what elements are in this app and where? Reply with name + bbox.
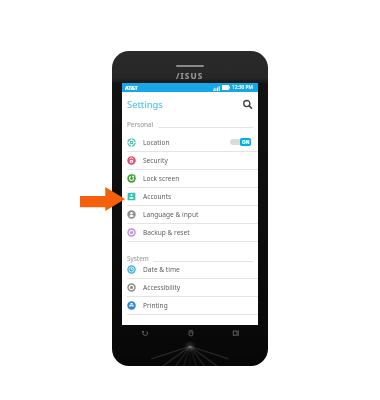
button[interactable]: Backup & reset [122,224,258,242]
staticText: ON [242,139,250,145]
staticText: Printing [143,301,168,310]
staticText: Settings [127,98,163,111]
button[interactable]: Home [168,324,213,342]
staticText: Language & input [143,210,199,219]
button[interactable]: Back [122,324,168,342]
staticText: 12:30 PM [232,84,253,91]
button[interactable]: Language & input [122,206,258,224]
staticText: Accessibility [143,283,181,292]
button[interactable]: Recent apps [213,324,258,342]
button[interactable]: Security [122,152,258,170]
button[interactable]: Date & time [122,261,258,279]
button[interactable]: Accounts [122,188,258,206]
staticText: Personal [127,120,154,129]
staticText: Accounts [143,192,172,201]
staticText: Backup & reset [143,228,190,237]
staticText: AT&T [125,84,138,91]
staticText: Location [143,138,170,147]
staticText: /ISUS [176,70,204,81]
button[interactable]: Location [122,134,258,152]
button[interactable]: Search [241,98,254,111]
button[interactable]: Lock screen [122,170,258,188]
staticText: Date & time [143,265,180,274]
staticText: Security [143,156,168,165]
staticText: System [127,254,149,263]
staticText: Lock screen [143,174,180,183]
other: Pointer highlighting Accounts [80,187,125,211]
button[interactable]: Printing [122,297,258,315]
button[interactable]: Accessibility [122,279,258,297]
